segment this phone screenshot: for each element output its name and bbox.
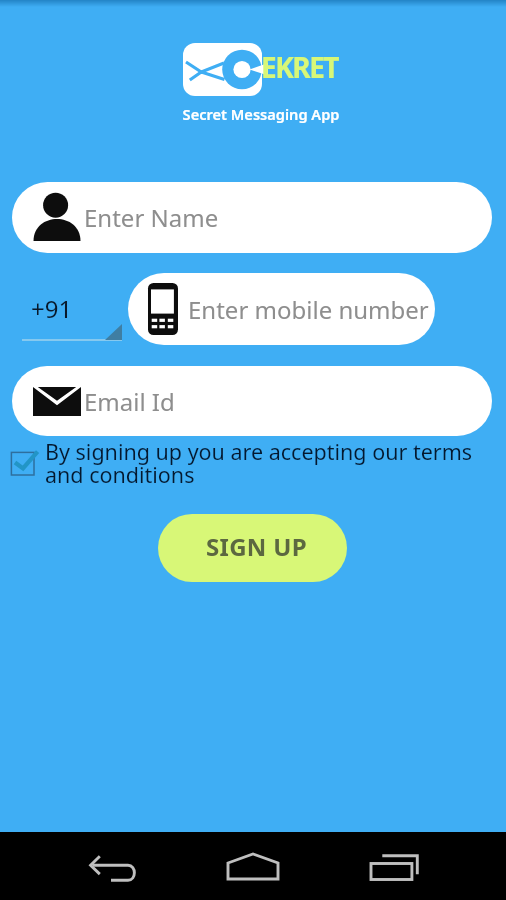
button[interactable]: SIGN UP (158, 514, 347, 582)
staticText: SIGN UP (206, 530, 307, 563)
button[interactable]: Back (81, 849, 145, 889)
staticText: Enter mobile number (188, 293, 429, 326)
button[interactable]: Accept terms and conditions (11, 450, 39, 478)
staticText: EKRET (261, 48, 338, 86)
button[interactable]: Recent apps (362, 846, 426, 886)
button[interactable]: Enter mobile number (128, 273, 435, 345)
button[interactable]: Home (221, 846, 285, 886)
button[interactable]: Country code +91 (22, 281, 122, 341)
staticText: +91 (31, 292, 73, 325)
button[interactable]: Enter Name (12, 182, 492, 253)
staticText: By signing up you are accepting our term… (45, 437, 473, 489)
button[interactable]: Email Id (12, 366, 492, 436)
staticText: Email Id (84, 385, 175, 418)
staticText: Enter Name (84, 201, 219, 234)
staticText: Secret Messaging App (8, 104, 506, 124)
